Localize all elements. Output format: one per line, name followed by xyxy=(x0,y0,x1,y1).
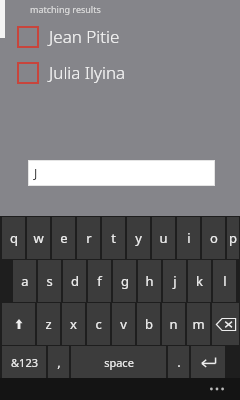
button[interactable]: w xyxy=(27,217,50,259)
button[interactable]: , xyxy=(48,346,69,378)
staticText: h xyxy=(145,272,154,290)
staticText: t xyxy=(111,229,116,247)
staticText: y xyxy=(135,229,142,247)
button[interactable]: b xyxy=(137,303,160,345)
staticText: x xyxy=(70,315,77,333)
button[interactable]: y xyxy=(127,217,150,259)
staticText: d xyxy=(71,272,79,290)
button[interactable]: Backspace xyxy=(212,303,239,345)
button[interactable]: u xyxy=(152,217,175,259)
staticText: , xyxy=(57,353,61,371)
button[interactable]: a xyxy=(13,260,36,302)
button[interactable]: e xyxy=(52,217,75,259)
staticText: . xyxy=(177,353,181,371)
staticText: z xyxy=(45,315,52,333)
staticText: n xyxy=(169,315,178,333)
button[interactable]: Enter xyxy=(191,346,225,378)
button[interactable]: &123 xyxy=(2,346,46,378)
staticText: s xyxy=(46,272,53,290)
button[interactable]: More options xyxy=(204,380,230,398)
button[interactable]: q xyxy=(2,217,25,259)
button[interactable]: t xyxy=(102,217,125,259)
button[interactable]: p xyxy=(227,217,239,259)
staticText: Julia Ilyina xyxy=(49,61,126,84)
button[interactable]: J xyxy=(29,161,214,185)
staticText: a xyxy=(21,272,29,290)
staticText: space xyxy=(104,355,134,370)
button[interactable]: f xyxy=(88,260,111,302)
button[interactable]: s xyxy=(38,260,61,302)
staticText: e xyxy=(60,229,68,247)
button[interactable]: Julia Ilyina xyxy=(0,57,240,88)
staticText: b xyxy=(145,315,153,333)
staticText: q xyxy=(10,229,18,247)
staticText: v xyxy=(120,315,127,333)
staticText: m xyxy=(192,315,205,333)
button[interactable]: space xyxy=(71,346,166,378)
staticText: Jean Pitie xyxy=(49,25,120,48)
button[interactable]: d xyxy=(63,260,86,302)
button[interactable]: m xyxy=(187,303,210,345)
button[interactable]: h xyxy=(138,260,161,302)
button[interactable]: r xyxy=(77,217,100,259)
staticText: matching results xyxy=(30,3,101,15)
staticText: r xyxy=(86,229,92,247)
button[interactable]: g xyxy=(113,260,136,302)
button[interactable]: o xyxy=(202,217,225,259)
staticText: p xyxy=(229,229,237,247)
button[interactable]: i xyxy=(177,217,200,259)
button[interactable]: . xyxy=(168,346,189,378)
staticText: u xyxy=(159,229,168,247)
staticText: c xyxy=(95,315,102,333)
button[interactable]: c xyxy=(87,303,110,345)
button[interactable]: l xyxy=(213,260,236,302)
button[interactable]: j xyxy=(163,260,186,302)
staticText: J xyxy=(34,165,38,181)
staticText: &123 xyxy=(11,355,38,370)
button[interactable]: z xyxy=(37,303,60,345)
button[interactable]: Jean Pitie xyxy=(0,21,240,52)
staticText: g xyxy=(121,272,129,290)
button[interactable]: n xyxy=(162,303,185,345)
staticText: o xyxy=(210,229,218,247)
staticText: f xyxy=(97,272,102,290)
staticText: j xyxy=(173,272,177,290)
staticText: l xyxy=(223,272,227,290)
staticText: w xyxy=(33,229,44,247)
button[interactable]: x xyxy=(62,303,85,345)
staticText: k xyxy=(196,272,203,290)
button[interactable]: Shift xyxy=(2,303,35,345)
button[interactable]: k xyxy=(188,260,211,302)
staticText: i xyxy=(187,229,191,247)
button[interactable]: v xyxy=(112,303,135,345)
